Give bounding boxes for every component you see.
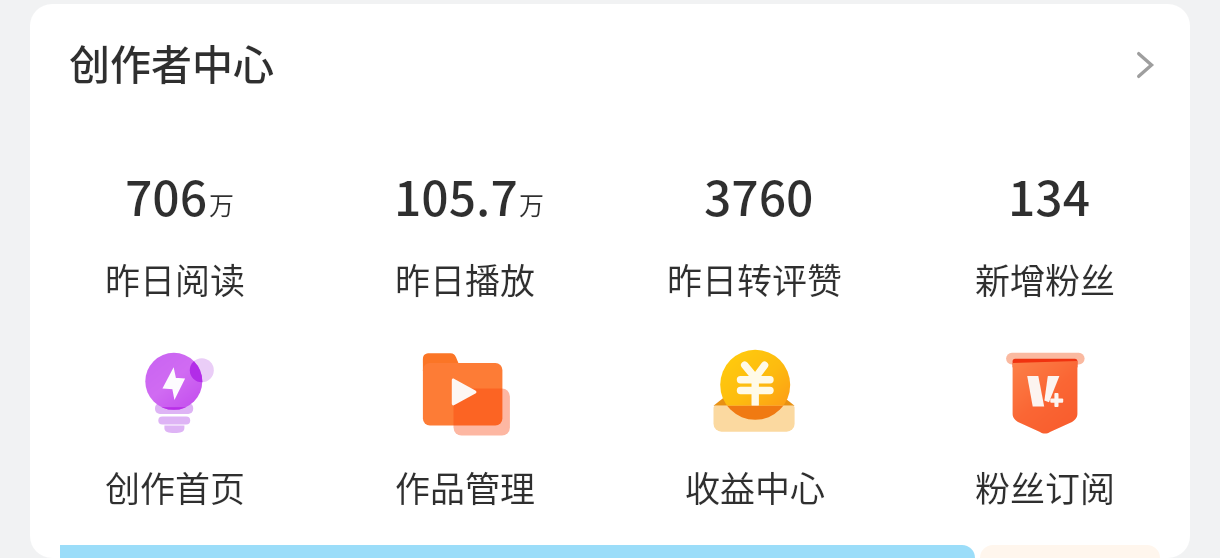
staticText: 昨日播放	[395, 253, 536, 304]
staticText: 收益中心	[685, 461, 826, 512]
button[interactable]: 收益中心	[610, 339, 900, 524]
staticText: 昨日阅读	[105, 253, 246, 304]
button[interactable]	[60, 545, 975, 558]
button[interactable]: 作品管理	[320, 339, 610, 524]
button[interactable]: 105.7	[320, 160, 610, 330]
staticText: 昨日转评赞	[667, 253, 843, 304]
other: 更多	[1128, 49, 1160, 81]
staticText: 3760	[704, 160, 814, 220]
button[interactable]: 706	[30, 160, 320, 330]
staticText: 万	[209, 186, 235, 222]
staticText: 创作者中心	[69, 32, 274, 91]
button[interactable]: 134	[900, 160, 1190, 330]
button[interactable]: 创作首页	[30, 339, 320, 524]
button[interactable]: 粉丝订阅	[900, 339, 1190, 524]
staticText: 万	[519, 186, 545, 222]
staticText: 新增粉丝	[975, 253, 1116, 304]
staticText: 作品管理	[395, 461, 536, 512]
button[interactable]: 创作者中心	[30, 4, 1190, 118]
staticText: 粉丝订阅	[975, 461, 1116, 512]
staticText: 706	[125, 160, 208, 220]
staticText: 创作首页	[105, 461, 246, 512]
staticText: 134	[1008, 160, 1091, 220]
staticText: 105.7	[394, 160, 518, 220]
button[interactable]: 3760	[610, 160, 900, 330]
